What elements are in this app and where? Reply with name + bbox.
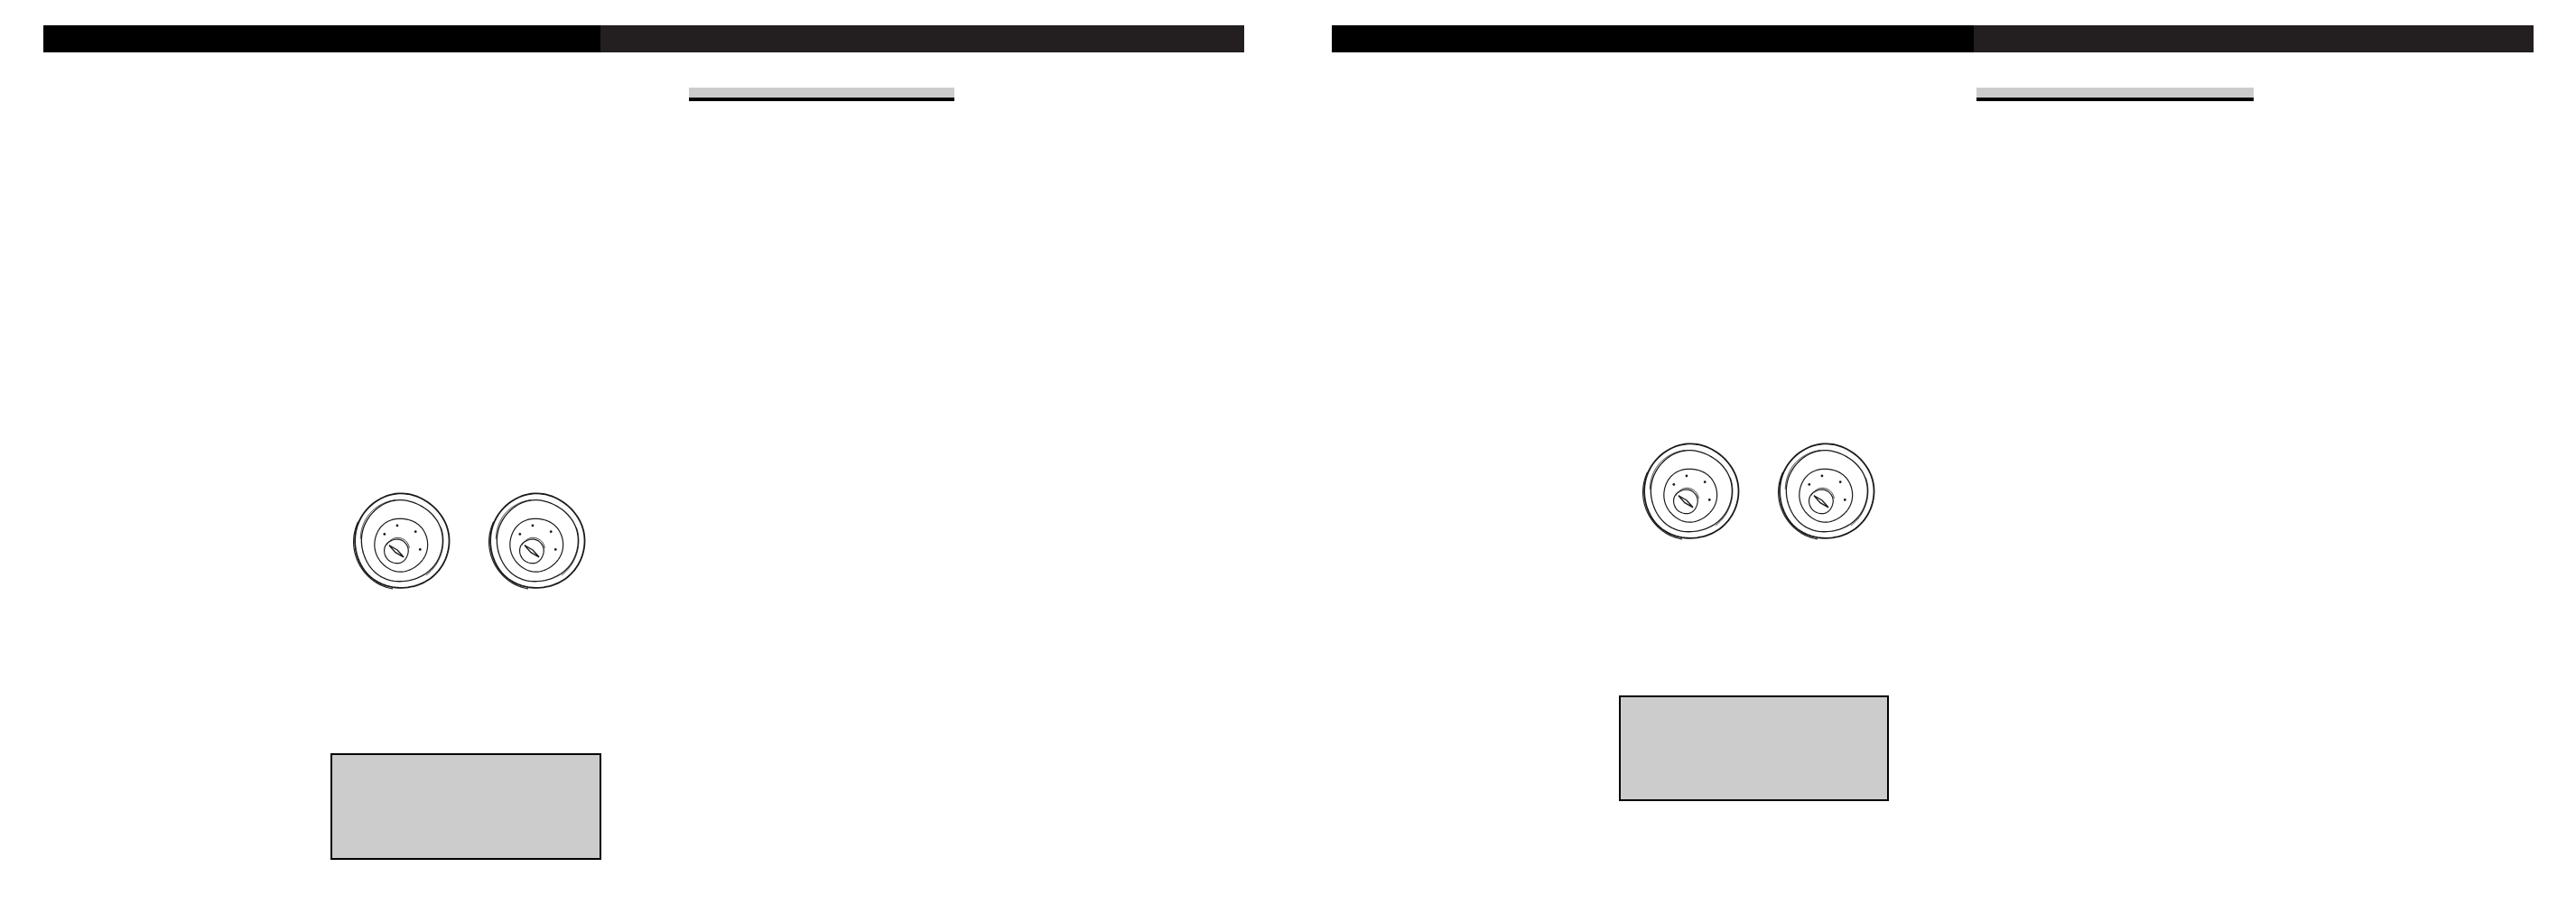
button[interactable]: Text field [689,88,954,101]
button[interactable]: Card [1619,695,1889,801]
button[interactable]: Title bar [43,25,1244,52]
button[interactable]: Gauge dial [354,493,450,589]
button[interactable]: Gauge dial [1643,443,1739,539]
button[interactable]: Text field [1976,88,2254,101]
button[interactable]: Gauge dial [1779,443,1874,539]
button[interactable]: Gauge dial [489,493,585,589]
button[interactable]: Title bar [1332,25,2534,52]
button[interactable]: Card [330,753,601,860]
